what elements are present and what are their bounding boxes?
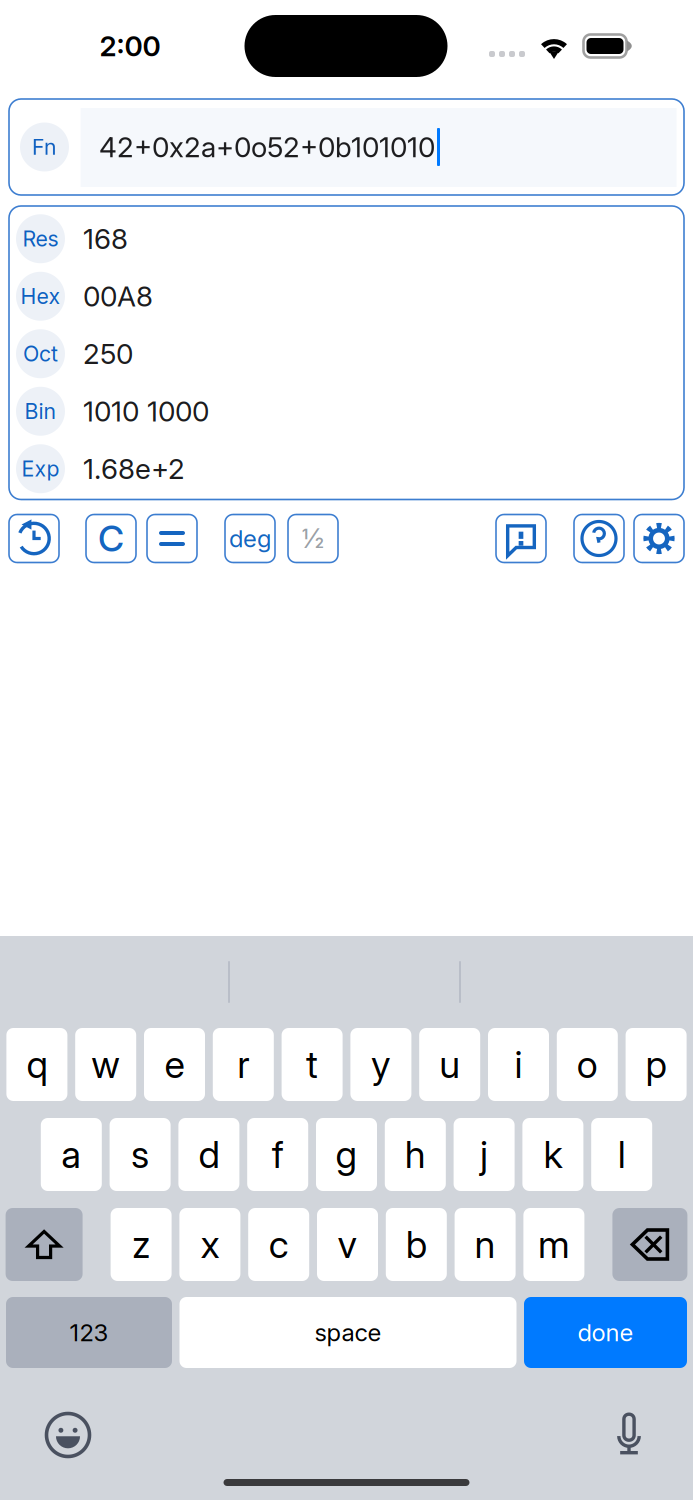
button[interactable]: Degrees [225,514,275,562]
button[interactable]: e [144,1028,205,1101]
staticText: e [164,1042,184,1087]
staticText: space [314,1318,381,1347]
staticText: x [200,1222,219,1267]
button[interactable]: t [282,1028,343,1101]
button[interactable]: l [591,1118,652,1191]
button[interactable]: k [522,1118,583,1191]
staticText: h [405,1132,426,1177]
button[interactable]: Shift [6,1208,83,1281]
staticText: 1⁄2 [301,522,324,555]
staticText: a [61,1132,81,1177]
staticText: f [272,1132,284,1177]
button[interactable]: space [179,1297,516,1368]
button[interactable]: Delete [612,1208,687,1281]
button[interactable]: z [111,1208,172,1281]
staticText: 2:00 [99,29,160,63]
staticText: Fn [32,134,57,160]
button[interactable]: w [75,1028,136,1101]
button[interactable]: h [385,1118,446,1191]
staticText: 1010 1000 [83,394,209,428]
button[interactable]: g [316,1118,377,1191]
button[interactable]: x [179,1208,240,1281]
button[interactable]: a [41,1118,102,1191]
staticText: done [577,1318,633,1347]
button[interactable]: n [455,1208,516,1281]
button[interactable]: i [488,1028,549,1101]
button[interactable]: u [419,1028,480,1101]
button[interactable]: r [213,1028,274,1101]
button[interactable]: Clear [86,514,136,562]
staticText: v [337,1222,357,1267]
staticText: l [618,1132,626,1177]
button[interactable]: done [524,1297,687,1368]
staticText: u [439,1042,460,1087]
staticText: Bin [24,398,56,424]
staticText: q [26,1042,47,1087]
staticText: 250 [83,337,133,371]
button[interactable]: History [9,514,59,562]
button[interactable]: d [178,1118,239,1191]
staticText: d [198,1132,219,1177]
staticText: Hex [20,283,60,309]
staticText: b [406,1222,427,1267]
staticText: Oct [23,341,58,367]
button[interactable]: Equals [147,514,197,562]
staticText: 168 [83,222,128,256]
button[interactable]: Feedback [496,514,546,562]
staticText: c [269,1222,289,1267]
staticText: r [237,1042,249,1087]
staticText: t [306,1042,318,1087]
staticText: w [91,1042,120,1087]
button[interactable]: p [626,1028,687,1101]
button[interactable]: Emoji [28,1404,108,1466]
button[interactable]: b [386,1208,447,1281]
staticText: k [543,1132,562,1177]
button[interactable]: m [523,1208,584,1281]
button[interactable]: 123 [6,1297,172,1368]
staticText: n [475,1222,496,1267]
button[interactable]: f [247,1118,308,1191]
button[interactable]: o [557,1028,618,1101]
staticText: p [646,1042,667,1087]
staticText: 42+0x2a+0o52+0b101010 [99,130,435,164]
button[interactable]: y [350,1028,411,1101]
staticText: z [132,1222,150,1267]
button[interactable]: q [6,1028,67,1101]
button[interactable]: Functions [9,99,80,195]
staticText: deg [229,524,271,553]
staticText: 123 [69,1318,108,1347]
staticText: 1.68e+2 [83,452,185,486]
button[interactable]: Help [574,514,624,562]
button[interactable]: c [248,1208,309,1281]
button[interactable]: s [110,1118,171,1191]
staticText: g [335,1132,357,1177]
staticText: Exp [21,456,59,482]
staticText: i [514,1042,522,1087]
button[interactable]: Dictate [589,1404,669,1466]
button[interactable]: j [454,1118,515,1191]
staticText: o [577,1042,598,1087]
button[interactable]: v [317,1208,378,1281]
staticText: m [538,1222,570,1267]
staticText: y [371,1042,391,1087]
button[interactable]: Settings [634,514,684,562]
staticText: Res [22,226,58,252]
staticText: j [480,1132,488,1177]
button[interactable]: Fraction [288,514,338,562]
staticText: s [131,1132,149,1177]
staticText: C [98,517,124,560]
staticText: 00A8 [83,279,153,313]
